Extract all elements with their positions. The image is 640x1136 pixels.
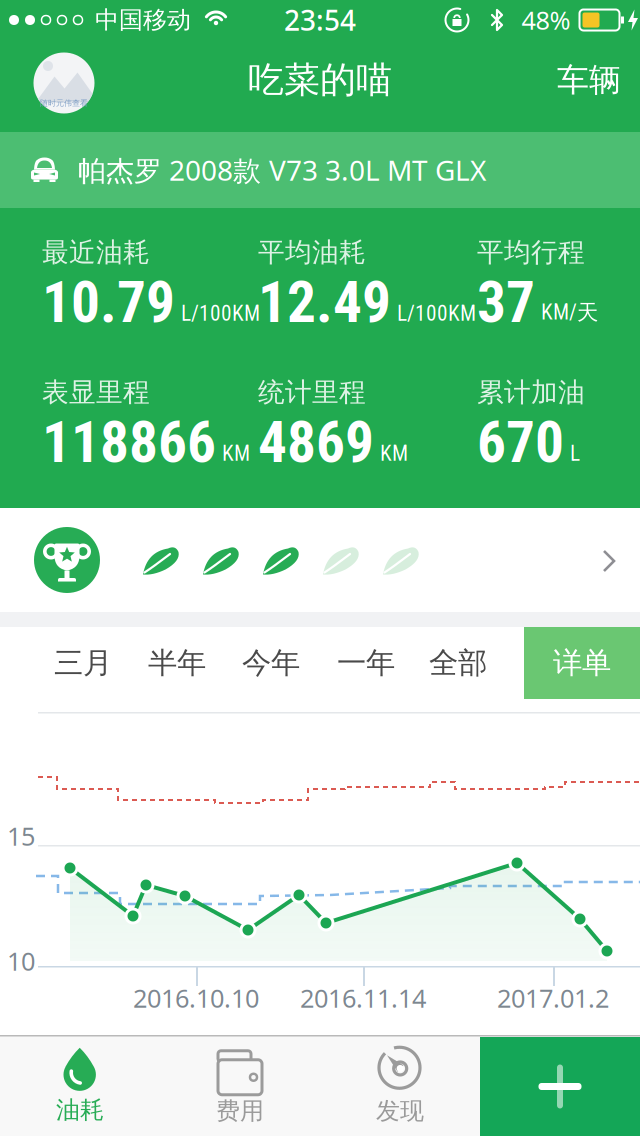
staticText: 累计加油 — [477, 376, 585, 409]
staticText: 48% — [521, 3, 570, 37]
button[interactable]: 油耗 — [0, 1038, 160, 1134]
staticText: 15 — [7, 819, 35, 853]
staticText: 费用 — [216, 1096, 264, 1126]
staticText: 发现 — [376, 1096, 424, 1126]
staticText: L/100KM — [181, 301, 260, 326]
staticText: 10 — [7, 944, 35, 978]
staticText: 车辆 — [557, 60, 621, 100]
button[interactable]: 三月 — [36, 627, 130, 699]
staticText: 半年 — [148, 645, 206, 681]
button[interactable]: 车辆 — [557, 60, 621, 100]
button[interactable] — [0, 508, 640, 612]
staticText: 平均油耗 — [258, 236, 366, 269]
staticText: 37 — [477, 269, 535, 336]
button[interactable] — [480, 1037, 640, 1136]
staticText: KM — [380, 441, 408, 466]
staticText: 今年 — [242, 645, 300, 681]
staticText: 吃菜的喵 — [248, 58, 392, 102]
button[interactable]: 全部 — [411, 627, 505, 699]
staticText: L/100KM — [397, 301, 476, 326]
staticText: 表显里程 — [42, 376, 150, 409]
staticText: 平均行程 — [477, 236, 585, 269]
button[interactable]: 随时元伟查看 — [32, 51, 96, 115]
staticText: L — [570, 441, 580, 466]
staticText: 帕杰罗 2008款 V73 3.0L MT GLX — [78, 151, 486, 189]
staticText: 118866 — [42, 409, 216, 476]
staticText: 详单 — [553, 645, 611, 681]
staticText: 2016.10.10 — [133, 981, 259, 1015]
staticText: 全部 — [429, 645, 487, 681]
button[interactable]: 一年 — [319, 627, 413, 699]
staticText: 2017.01.2 — [497, 981, 609, 1015]
staticText: 随时元伟查看 — [40, 98, 88, 108]
staticText: 2016.11.14 — [300, 981, 426, 1015]
button[interactable]: 帕杰罗 2008款 V73 3.0L MT GLX — [0, 132, 640, 208]
staticText: 12.49 — [258, 269, 391, 336]
staticText: 4869 — [258, 409, 374, 476]
staticText: 三月 — [54, 645, 112, 681]
staticText: 中国移动 — [95, 5, 191, 35]
staticText: 670 — [477, 409, 564, 476]
button[interactable]: 半年 — [130, 627, 224, 699]
staticText: 一年 — [337, 645, 395, 681]
staticText: KM — [222, 441, 250, 466]
staticText: 23:54 — [284, 1, 356, 39]
button[interactable]: 费用 — [160, 1038, 320, 1134]
button[interactable]: 发现 — [320, 1038, 480, 1134]
button[interactable]: 详单 — [524, 627, 640, 699]
staticText: 10.79 — [42, 269, 175, 336]
staticText: 最近油耗 — [42, 236, 150, 269]
staticText: KM/天 — [541, 299, 598, 326]
staticText: 统计里程 — [258, 376, 366, 409]
button[interactable]: 今年 — [224, 627, 318, 699]
staticText: 油耗 — [56, 1095, 104, 1125]
